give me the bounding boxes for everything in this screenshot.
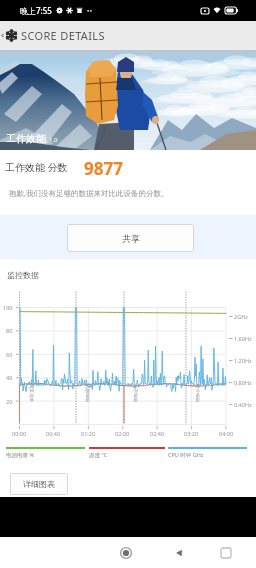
staticText: 文字编辑 xyxy=(132,384,138,402)
staticText: 9877 xyxy=(84,157,123,180)
staticText: 温度 °C xyxy=(89,451,108,459)
staticText: 0.40Hz xyxy=(234,401,252,408)
other: Back xyxy=(0,33,5,38)
staticText: 00:40 xyxy=(46,430,61,437)
staticText: SCORE DETAILS xyxy=(21,28,105,43)
staticText: 共享 xyxy=(122,233,140,244)
staticText: 网页浏览 xyxy=(28,384,34,402)
staticText: 40 xyxy=(6,374,13,381)
button[interactable]: 共享 xyxy=(67,224,194,252)
staticText: 02:00 xyxy=(115,430,130,437)
staticText: 电池电量 % xyxy=(6,451,35,459)
staticText: CPU 时钟 GHz xyxy=(168,451,204,459)
button[interactable]: Home xyxy=(113,537,139,568)
staticText: 详细图表 xyxy=(23,479,55,489)
staticText: 监控数据 xyxy=(7,270,39,280)
staticText: 工作效能 分数 xyxy=(5,160,68,174)
staticText: 视频编辑 xyxy=(84,384,90,402)
staticText: 03:20 xyxy=(184,430,199,437)
staticText: 02:40 xyxy=(150,430,165,437)
staticText: 工作效能 xyxy=(6,132,46,145)
staticText: 60 xyxy=(6,351,13,358)
staticText: 图片编辑 xyxy=(194,384,200,402)
staticText: 抱歉,我们没有足够的数据来对比此设备的分数。 xyxy=(9,188,169,198)
staticText: 0.80Hz xyxy=(234,379,252,386)
button[interactable]: Back xyxy=(0,21,256,50)
staticText: 2GHz xyxy=(234,313,248,320)
staticText: 100 xyxy=(3,304,13,311)
staticText: 1.0 xyxy=(49,136,58,144)
staticText: 晚上7:55 xyxy=(20,5,52,16)
button[interactable]: Back xyxy=(166,537,192,568)
staticText: 80 xyxy=(6,327,13,334)
staticText: 20 xyxy=(6,398,13,405)
staticText: 00:00 xyxy=(12,430,27,437)
staticText: 1.20Hz xyxy=(234,357,252,364)
staticText: 04:00 xyxy=(219,430,234,437)
staticText: 01:20 xyxy=(81,430,96,437)
button[interactable]: Recents xyxy=(213,537,239,568)
staticText: 1.60Hz xyxy=(234,335,252,342)
button[interactable]: 详细图表 xyxy=(10,473,68,495)
